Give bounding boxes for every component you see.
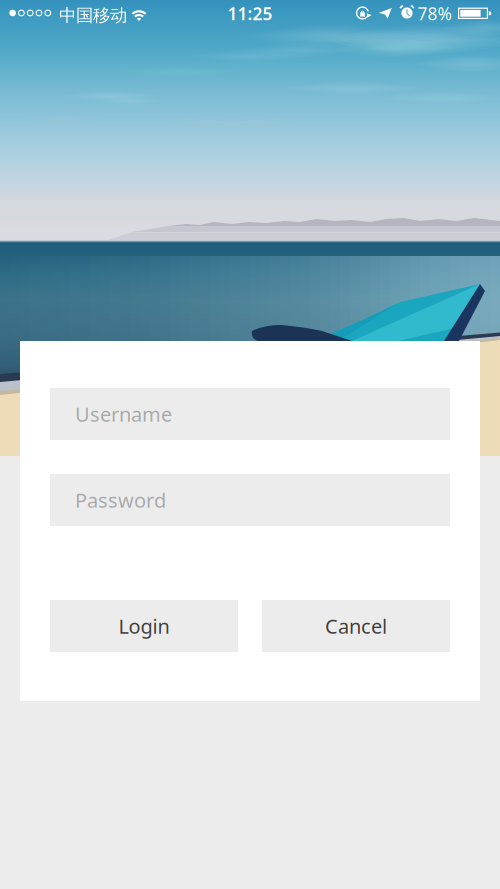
button[interactable]: Password <box>50 474 450 526</box>
staticText: 11:25 <box>227 2 272 25</box>
button[interactable]: Cancel <box>262 600 450 652</box>
staticText: Login <box>118 613 169 639</box>
staticText: 78% <box>417 2 451 25</box>
staticText: Password <box>75 487 166 513</box>
button[interactable]: Username <box>50 388 450 440</box>
staticText: Cancel <box>325 613 387 639</box>
button[interactable]: Login <box>50 600 238 652</box>
staticText: 中国移动 <box>59 5 127 26</box>
staticText: Username <box>75 401 172 427</box>
